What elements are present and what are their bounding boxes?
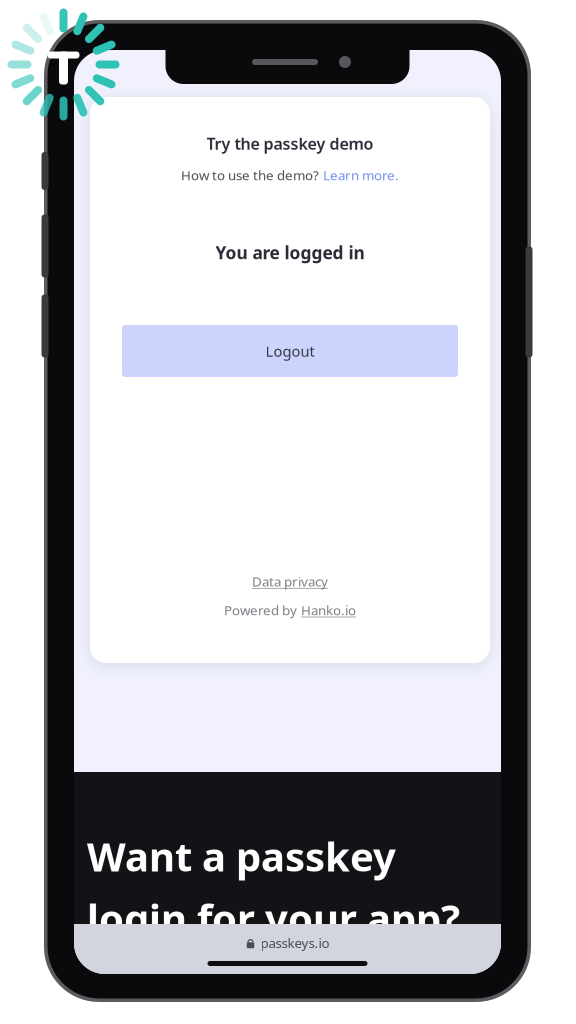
staticText: Learn more. <box>323 166 399 184</box>
staticText: login for your app? <box>87 891 460 944</box>
staticText: Want a passkey <box>87 829 396 882</box>
staticText: You are logged in <box>215 241 364 264</box>
button[interactable]: passkeys.io <box>245 934 329 952</box>
staticText: Data privacy <box>252 573 328 590</box>
button[interactable]: Data privacy <box>252 573 328 590</box>
button[interactable]: Learn more. <box>323 166 399 184</box>
button[interactable]: Logout <box>122 325 458 377</box>
staticText: Try the passkey demo <box>206 133 373 154</box>
staticText: passkeys.io <box>260 934 329 952</box>
button[interactable]: Hanko.io <box>301 601 356 619</box>
staticText: Powered by <box>224 601 297 619</box>
staticText: Logout <box>265 341 314 361</box>
staticText: How to use the demo? <box>181 166 319 184</box>
staticText: Hanko.io <box>301 601 356 619</box>
